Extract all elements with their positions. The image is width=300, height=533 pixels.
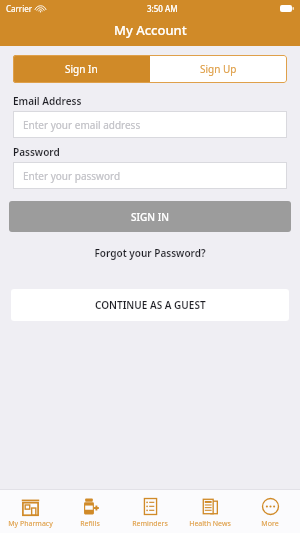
button[interactable]: My Pharmacy: [0, 490, 60, 533]
staticText: My Account: [114, 21, 187, 39]
button[interactable]: CONTINUE AS A GUEST: [11, 289, 289, 321]
other: Health News: [201, 497, 220, 516]
staticText: Sign In: [65, 62, 98, 76]
button[interactable]: Sign In: [13, 55, 150, 83]
staticText: SIGN IN: [131, 210, 169, 224]
staticText: CONTINUE AS A GUEST: [95, 298, 206, 312]
staticText: More: [261, 519, 279, 529]
staticText: Enter your password: [23, 169, 121, 183]
staticText: Email Address: [13, 94, 82, 108]
staticText: 3:50 AM: [147, 3, 178, 14]
button[interactable]: Sign Up: [150, 55, 287, 83]
staticText: Refills: [80, 519, 100, 529]
staticText: Carrier: [6, 3, 33, 14]
other: My Pharmacy: [21, 497, 40, 516]
button[interactable]: Reminders: [120, 490, 180, 533]
button[interactable]: Health News: [180, 490, 240, 533]
other: Reminders: [141, 497, 160, 516]
staticText: My Pharmacy: [8, 519, 53, 529]
button[interactable]: Enter your password: [13, 162, 287, 189]
staticText: Reminders: [132, 519, 168, 529]
button[interactable]: SIGN IN: [9, 201, 291, 232]
staticText: Health News: [189, 519, 231, 529]
staticText: Forgot your Password?: [0, 246, 300, 260]
staticText: Password: [13, 145, 60, 159]
button[interactable]: Refills: [60, 490, 120, 533]
staticText: Enter your email address: [23, 118, 141, 132]
button[interactable]: More: [240, 490, 300, 533]
button[interactable]: Enter your email address: [13, 111, 287, 138]
staticText: Sign Up: [200, 62, 237, 76]
other: More: [261, 497, 280, 516]
other: Refills: [81, 497, 100, 516]
